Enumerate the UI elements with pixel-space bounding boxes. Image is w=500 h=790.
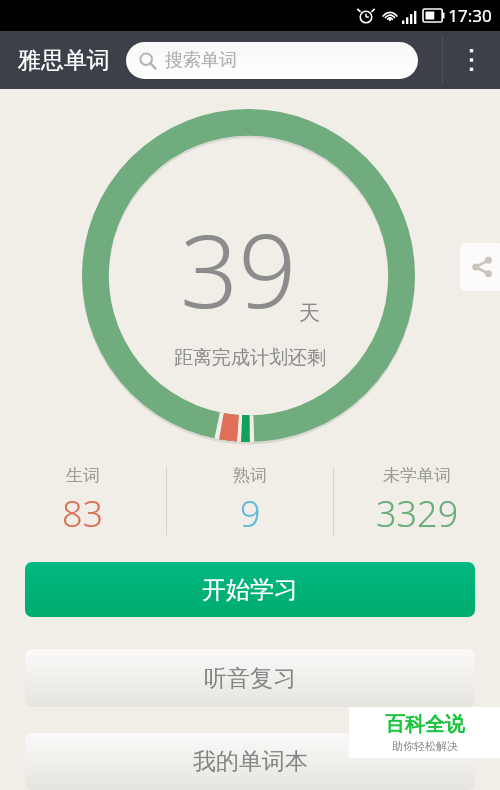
button[interactable]: 听音复习 [25,649,475,707]
staticText: 17:30 [448,4,492,27]
staticText: 距离完成计划还剩 [174,346,326,370]
button[interactable]: 未学单词 [334,460,500,542]
staticText: 雅思单词 [18,46,110,75]
staticText: 39 [180,199,297,338]
staticText: 助你轻松解决 [392,739,458,753]
staticText: 熟词 [233,465,267,486]
staticText: 我的单词本 [193,747,308,776]
staticText: 83 [62,489,104,538]
button[interactable]: 生词 [0,460,166,542]
staticText: 天 [299,300,320,326]
staticText: 搜索单词 [165,49,237,72]
staticText: 9 [240,489,261,538]
staticText: 开始学习 [202,575,298,605]
button[interactable]: 熟词 [167,460,333,542]
button[interactable]: 开始学习 [25,562,475,617]
staticText: 3329 [376,489,459,538]
staticText: 百科全说 [385,712,465,737]
button[interactable]: 搜索单词 [126,42,418,79]
button[interactable]: 我的单词本 [25,733,475,790]
button[interactable]: 雅思单词 [18,46,110,75]
staticText: 未学单词 [383,465,451,486]
staticText: 生词 [66,465,100,486]
staticText: 听音复习 [204,664,296,693]
button[interactable]: Share [460,243,500,291]
button[interactable]: More options [443,31,500,89]
